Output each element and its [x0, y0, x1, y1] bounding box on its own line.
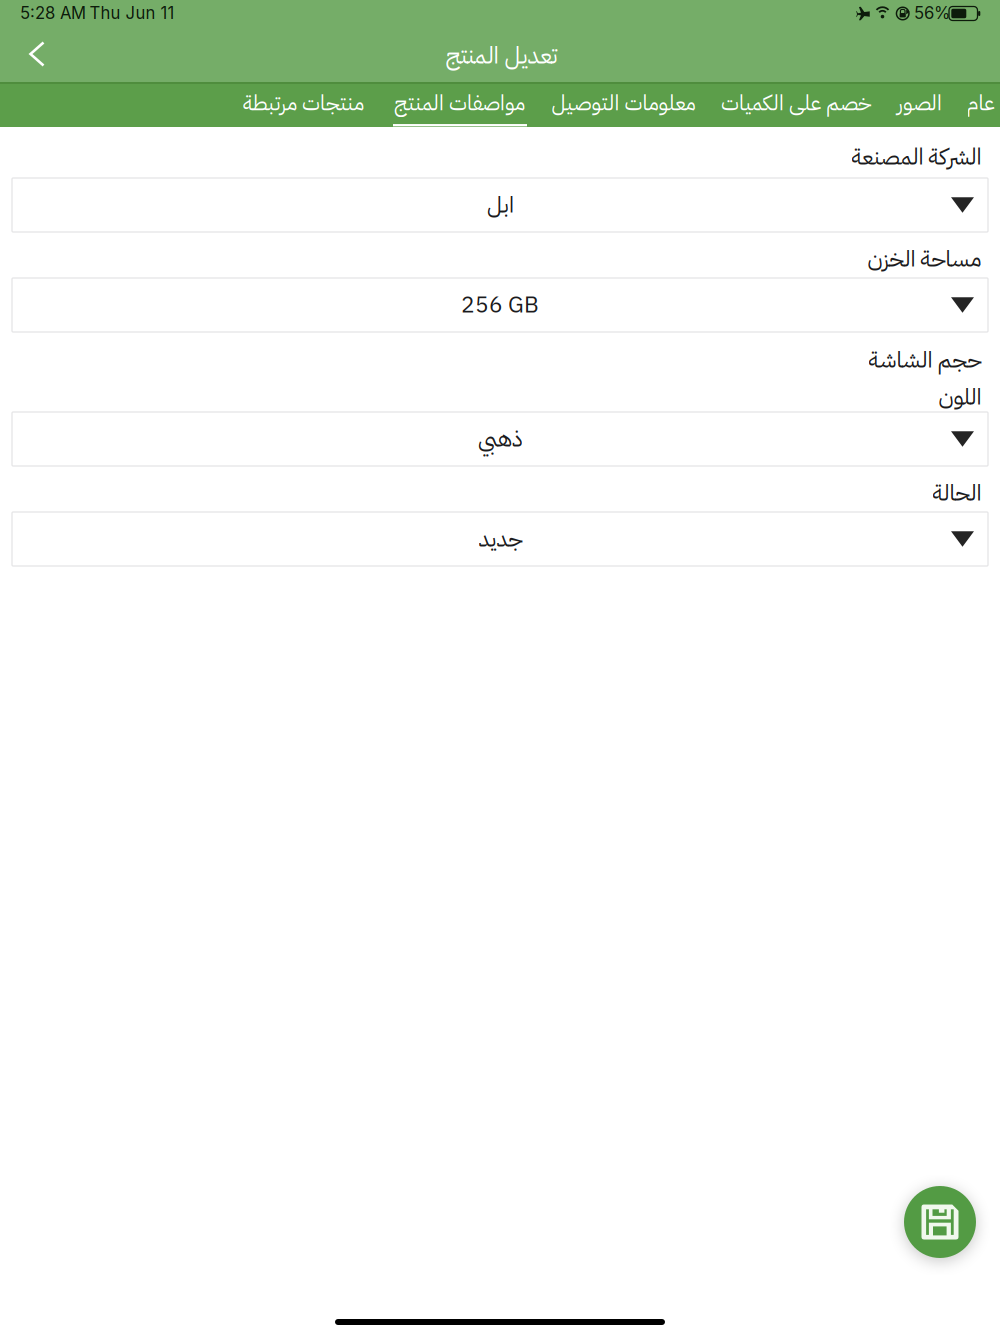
staticText: Thu Jun 11	[89, 3, 174, 23]
staticText: جديد	[478, 522, 522, 556]
button[interactable]: منتجات مرتبطة	[242, 80, 363, 125]
button[interactable]: الصور	[896, 80, 941, 125]
button[interactable]: Save	[904, 1186, 976, 1258]
staticText: 5:28 AM	[20, 3, 86, 23]
staticText: ابل	[486, 188, 513, 222]
staticText: معلومات التوصيل	[551, 87, 695, 119]
staticText: مساحة الخزن	[867, 242, 981, 276]
button[interactable]: عام	[966, 80, 994, 125]
staticText: الحالة	[932, 476, 981, 510]
staticText: عام	[966, 87, 994, 119]
button[interactable]: 256 GB	[12, 278, 988, 332]
staticText: خصم على الكميات	[720, 87, 871, 119]
staticText: اللون	[938, 380, 981, 414]
staticText: ذهبي	[477, 422, 522, 456]
button[interactable]: مواصفات المنتج	[393, 80, 524, 125]
staticText: حجم الشاشة	[868, 343, 981, 377]
staticText: 56%	[914, 3, 950, 23]
button[interactable]: معلومات التوصيل	[551, 80, 695, 125]
button[interactable]: Back	[8, 26, 66, 82]
staticText: تعديل المنتج	[445, 37, 557, 73]
button[interactable]: جديد	[12, 512, 988, 566]
button[interactable]: ابل	[12, 178, 988, 232]
staticText: الشركة المصنعة	[851, 140, 981, 174]
button[interactable]: ذهبي	[12, 412, 988, 466]
staticText: 256 GB	[461, 288, 539, 322]
staticText: مواصفات المنتج	[393, 87, 524, 119]
staticText: الصور	[896, 87, 941, 119]
button[interactable]: خصم على الكميات	[720, 80, 871, 125]
staticText: منتجات مرتبطة	[242, 87, 363, 119]
